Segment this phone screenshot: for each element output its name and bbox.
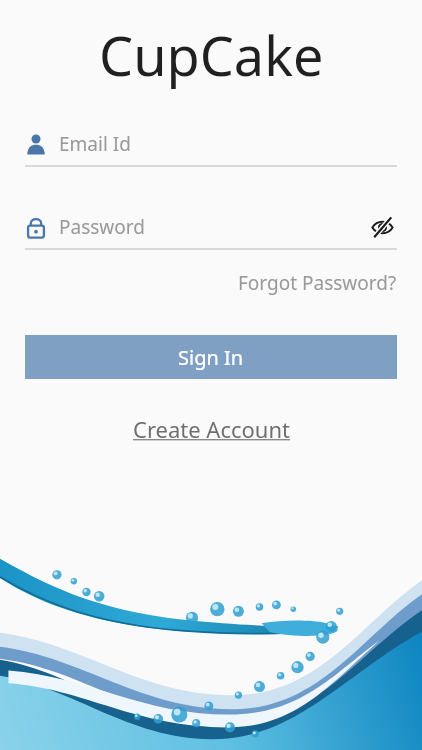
button[interactable]: Show password xyxy=(367,212,397,242)
staticText: Forgot Password? xyxy=(238,270,397,296)
button[interactable]: Email Id xyxy=(25,127,397,167)
button[interactable]: Create Account xyxy=(133,411,290,447)
button[interactable]: Password xyxy=(25,210,397,250)
button[interactable]: Forgot Password? xyxy=(238,266,397,300)
staticText: Email Id xyxy=(59,131,131,157)
staticText: Create Account xyxy=(133,414,290,444)
staticText: Password xyxy=(59,214,145,240)
staticText: CupCake xyxy=(99,18,324,92)
staticText: Sign In xyxy=(178,344,244,371)
button[interactable]: Sign In xyxy=(25,335,397,379)
